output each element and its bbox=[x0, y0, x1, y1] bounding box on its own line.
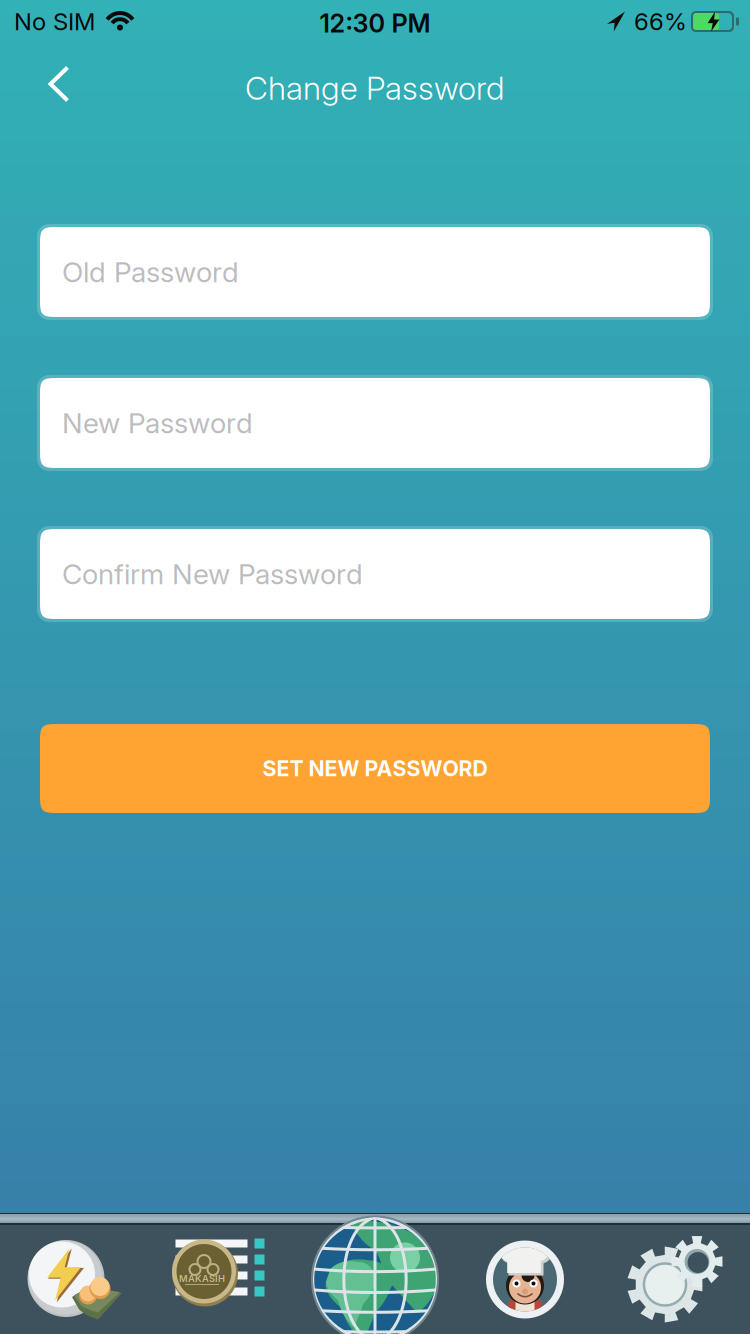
button[interactable]: New Password bbox=[30, 375, 720, 471]
staticText: MAKASIH bbox=[179, 1273, 225, 1284]
staticText: 66% bbox=[634, 7, 687, 36]
staticText: Confirm New Password bbox=[62, 557, 363, 591]
staticText: SET NEW PASSWORD bbox=[262, 756, 487, 781]
staticText: 12:30 PM bbox=[319, 8, 430, 39]
button[interactable]: Back bbox=[0, 48, 88, 128]
button[interactable]: Settings bbox=[600, 1225, 750, 1334]
button[interactable]: SET NEW PASSWORD bbox=[40, 724, 710, 813]
staticText: Change Password bbox=[245, 69, 505, 107]
button[interactable]: Explore bbox=[300, 1225, 450, 1334]
staticText: New Password bbox=[62, 406, 253, 440]
staticText: No SIM bbox=[14, 7, 95, 36]
staticText: Old Password bbox=[62, 255, 239, 289]
button[interactable]: Old Password bbox=[30, 224, 720, 320]
button[interactable]: Profile bbox=[450, 1225, 600, 1334]
button[interactable]: Rewards bbox=[150, 1225, 300, 1334]
button[interactable]: Confirm New Password bbox=[30, 526, 720, 622]
button[interactable]: Energy bbox=[0, 1225, 150, 1334]
